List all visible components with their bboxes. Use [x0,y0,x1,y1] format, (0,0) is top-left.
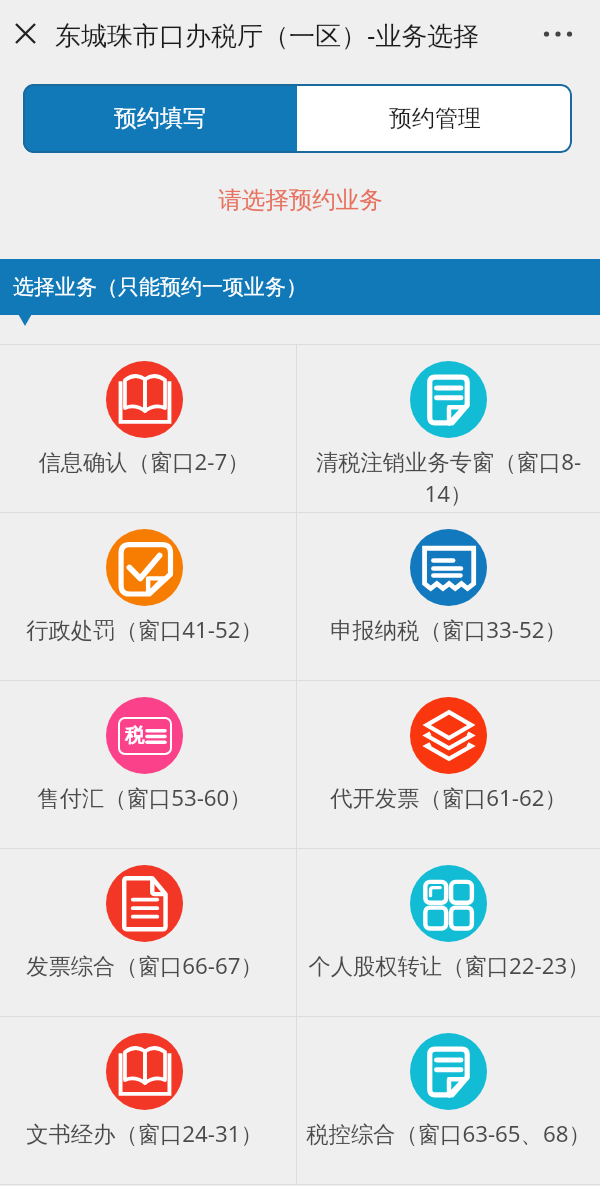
button[interactable]: 申报纳税（窗口33-52） [297,513,600,680]
button[interactable]: 代开发票（窗口61-62） [297,681,600,848]
button[interactable]: More options [539,15,577,53]
button[interactable]: 预约填写 [23,84,297,153]
staticText: 代开发票（窗口61-62） [330,782,567,812]
staticText: 税控综合（窗口63-65、68） [306,1118,591,1148]
button[interactable]: 预约管理 [297,84,572,153]
staticText: 文书经办（窗口24-31） [26,1118,263,1148]
staticText: 个人股权转让（窗口22-23） [308,950,590,980]
staticText: 东城珠市口办税厅（一区）-业务选择 [55,17,480,53]
staticText: 信息确认（窗口2-7） [38,446,250,476]
button[interactable]: 个人股权转让（窗口22-23） [297,849,600,1016]
staticText: 清税注销业务专窗（窗口8-​14） [303,446,594,509]
button[interactable]: 税控综合（窗口63-65、68） [297,1017,600,1184]
button[interactable]: 清税注销业务专窗（窗口8-​14） [297,345,600,512]
button[interactable]: 行政处罚（窗口41-52） [0,513,296,680]
staticText: 售付汇（窗口53-60） [37,782,252,812]
staticText: 请选择预约业务 [218,185,383,215]
button[interactable]: 税 [0,681,296,848]
button[interactable]: Close [8,16,42,50]
staticText: 选择业务（只能预约一项业务） [13,274,307,300]
staticText: 申报纳税（窗口33-52） [330,614,567,644]
staticText: 预约管理 [389,104,481,133]
button[interactable]: 文书经办（窗口24-31） [0,1017,296,1184]
staticText: 发票综合（窗口66-67） [26,950,263,980]
button[interactable]: 发票综合（窗口66-67） [0,849,296,1016]
staticText: 税 [125,724,144,748]
staticText: 行政处罚（窗口41-52） [26,614,263,644]
button[interactable]: 信息确认（窗口2-7） [0,345,296,512]
staticText: 预约填写 [114,104,206,133]
